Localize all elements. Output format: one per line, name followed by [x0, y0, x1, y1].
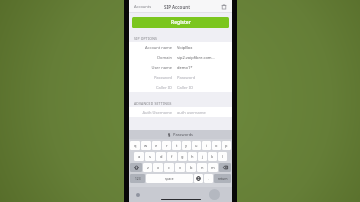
- button[interactable]: r: [162, 141, 171, 150]
- staticText: l: [222, 154, 224, 159]
- button[interactable]: 123: [130, 174, 145, 183]
- staticText: Register: [171, 19, 191, 26]
- button[interactable]: Password: [129, 72, 232, 82]
- button[interactable]: j: [198, 152, 207, 161]
- button[interactable]: p: [222, 141, 231, 150]
- button[interactable]: t: [172, 141, 181, 150]
- staticText: r: [166, 143, 168, 148]
- button[interactable]: Auth Username: [129, 107, 232, 117]
- button[interactable]: h: [188, 152, 197, 161]
- button[interactable]: Backspace: [219, 163, 231, 172]
- staticText: SIP OPTIONS: [134, 36, 157, 41]
- button[interactable]: w: [141, 141, 151, 150]
- staticText: auth username: [177, 110, 206, 115]
- button[interactable]: o: [212, 141, 221, 150]
- staticText: v: [179, 165, 182, 170]
- staticText: Caller ID: [155, 85, 172, 90]
- button[interactable]: n: [197, 163, 207, 172]
- staticText: t: [176, 143, 178, 148]
- staticText: x: [157, 165, 160, 170]
- staticText: space: [165, 177, 174, 181]
- staticText: Password: [177, 75, 196, 80]
- button[interactable]: z: [143, 163, 152, 172]
- staticText: Accounts: [134, 4, 152, 9]
- button[interactable]: e: [152, 141, 161, 150]
- button[interactable]: y: [182, 141, 191, 150]
- staticText: y: [185, 143, 188, 148]
- staticText: Passwords: [173, 132, 194, 137]
- button[interactable]: Emoji keyboard: [194, 174, 203, 183]
- button[interactable]: l: [218, 152, 227, 161]
- button[interactable]: k: [208, 152, 217, 161]
- staticText: Auth Username: [142, 110, 172, 115]
- button[interactable]: Register: [132, 17, 229, 28]
- button[interactable]: .: [204, 174, 213, 183]
- button[interactable]: return: [214, 174, 231, 183]
- button[interactable]: c: [164, 163, 174, 172]
- staticText: a: [138, 154, 141, 159]
- staticText: i: [206, 143, 208, 148]
- button[interactable]: u: [192, 141, 201, 150]
- button[interactable]: space: [146, 174, 193, 183]
- button[interactable]: b: [186, 163, 196, 172]
- staticText: n: [201, 165, 204, 170]
- button[interactable]: g: [178, 152, 187, 161]
- button[interactable]: f: [167, 152, 177, 161]
- staticText: z: [147, 165, 149, 170]
- staticText: c: [168, 165, 170, 170]
- staticText: 123: [135, 177, 141, 181]
- staticText: s: [149, 154, 151, 159]
- button[interactable]: Shift: [130, 163, 142, 172]
- staticText: Account name: [145, 45, 172, 50]
- button[interactable]: x: [153, 163, 163, 172]
- staticText: SIP Account: [164, 4, 190, 10]
- staticText: Password: [153, 75, 172, 80]
- button[interactable]: Domain: [129, 52, 232, 62]
- staticText: h: [191, 154, 194, 159]
- button[interactable]: a: [134, 152, 144, 161]
- button[interactable]: Delete account: [219, 2, 228, 11]
- button[interactable]: User name: [129, 62, 232, 72]
- staticText: d: [160, 154, 163, 159]
- staticText: k: [211, 154, 214, 159]
- staticText: .: [208, 177, 209, 181]
- button[interactable]: Accounts: [133, 4, 153, 9]
- button[interactable]: i: [202, 141, 211, 150]
- button[interactable]: m: [208, 163, 218, 172]
- staticText: j: [202, 154, 204, 159]
- staticText: q: [134, 143, 137, 148]
- staticText: f: [171, 154, 173, 159]
- staticText: Domain: [157, 55, 172, 60]
- staticText: VoipBox: [177, 45, 193, 50]
- button[interactable]: q: [130, 141, 140, 150]
- staticText: m: [211, 165, 215, 170]
- staticText: sip2.voipfibre.com…: [177, 55, 215, 60]
- staticText: p: [225, 143, 228, 148]
- staticText: ADVANCED SETTINGS: [134, 101, 172, 106]
- button[interactable]: Assistive touch: [209, 189, 220, 200]
- staticText: demo1*: [177, 65, 193, 70]
- button[interactable]: d: [156, 152, 166, 161]
- staticText: w: [144, 143, 148, 148]
- staticText: Caller ID: [177, 85, 194, 90]
- staticText: e: [155, 143, 158, 148]
- button[interactable]: Caller ID: [129, 82, 232, 92]
- staticText: g: [181, 154, 184, 159]
- button[interactable]: Dictation: [136, 193, 140, 197]
- staticText: User name: [151, 65, 172, 70]
- button[interactable]: Passwords: [129, 130, 232, 139]
- button[interactable]: v: [175, 163, 185, 172]
- staticText: o: [215, 143, 218, 148]
- button[interactable]: s: [145, 152, 155, 161]
- button[interactable]: Account name: [129, 42, 232, 52]
- staticText: u: [195, 143, 198, 148]
- staticText: return: [218, 177, 228, 181]
- staticText: b: [190, 165, 193, 170]
